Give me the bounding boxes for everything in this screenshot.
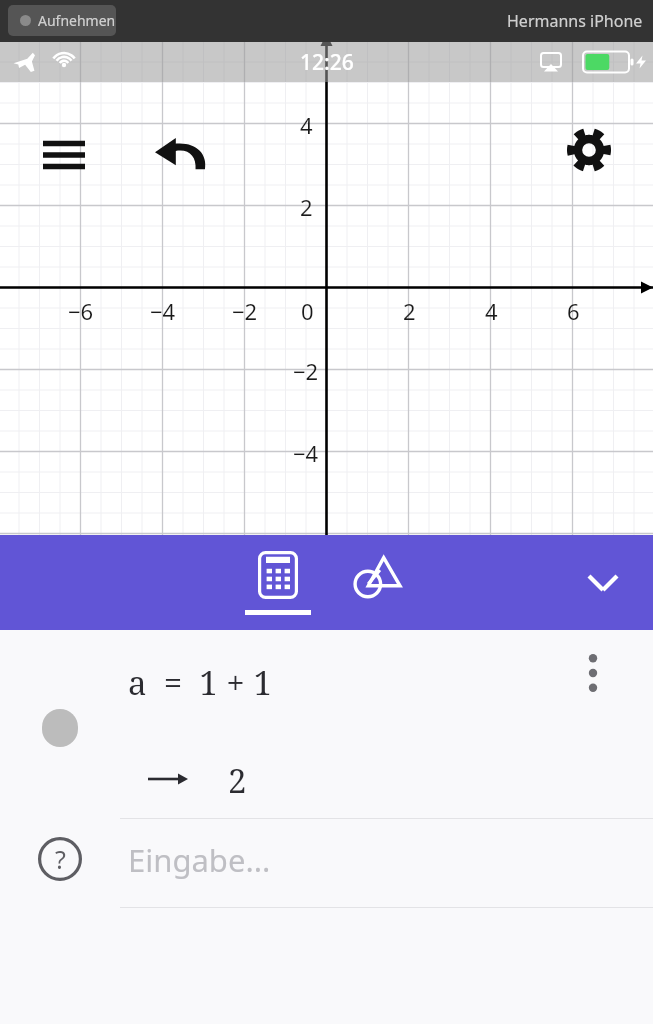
staticText: −2 [293,356,319,384]
button[interactable]: Aufnehmen [8,5,116,36]
button[interactable]: Help [36,835,84,883]
staticText: 4 [485,296,498,324]
button[interactable]: Show object [42,709,78,747]
staticText: −4 [150,296,176,324]
staticText: −2 [232,296,258,324]
button[interactable]: Undo [150,129,212,181]
button[interactable]: Calculator [238,541,318,625]
button[interactable]: Collapse [575,555,631,611]
button[interactable]: Tools [338,541,414,625]
button[interactable]: Menu [38,129,90,181]
staticText: Aufnehmen [38,11,116,30]
staticText: 2 [228,758,247,803]
staticText: 6 [567,296,580,324]
staticText: 12:26 [300,48,354,77]
button[interactable]: Show object [0,630,653,819]
staticText: −4 [293,438,319,466]
staticText: 2 [300,192,313,220]
button[interactable]: More options [568,642,618,704]
staticText: Hermanns iPhone [507,10,643,32]
staticText: −6 [68,296,94,324]
button[interactable]: Settings [563,124,615,176]
button[interactable]: Help [0,819,653,908]
staticText: 2 [403,296,416,324]
staticText: 4 [300,110,313,138]
staticText: ? [55,842,66,876]
staticText: Eingabe... [128,839,271,881]
staticText: a = 1 + 1 [128,660,272,705]
staticText: 0 [301,296,314,324]
